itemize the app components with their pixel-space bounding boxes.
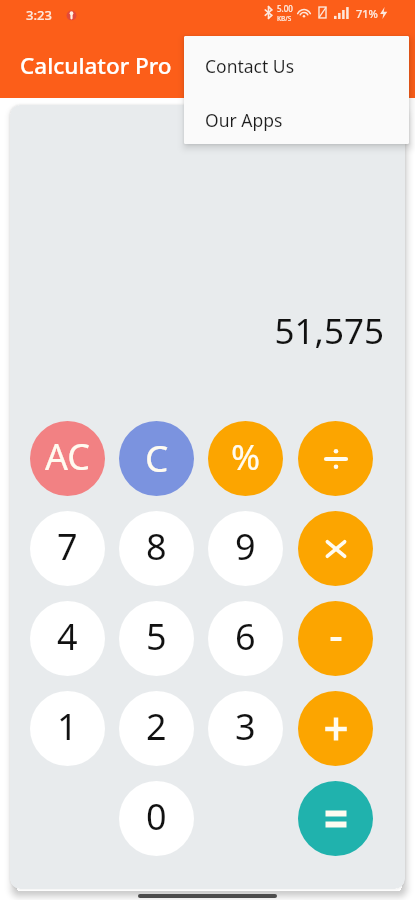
staticText: 0 [146, 792, 167, 841]
staticText: 2 [146, 702, 167, 751]
staticText: 5.00 [277, 3, 293, 14]
button[interactable]: AC [30, 421, 105, 496]
button[interactable]: 0 [119, 781, 194, 856]
staticText: 71% [356, 6, 378, 21]
staticText: 9 [235, 522, 256, 571]
button[interactable]: Multiply [298, 511, 373, 586]
staticText: 7 [57, 522, 78, 571]
button[interactable]: Equals [298, 781, 373, 856]
staticText: Contact Us [205, 54, 295, 78]
button[interactable]: 1 [30, 691, 105, 766]
staticText: 8 [146, 522, 167, 571]
button[interactable]: 7 [30, 511, 105, 586]
button[interactable]: Our Apps [184, 90, 409, 144]
staticText: 4 [57, 612, 78, 661]
button[interactable]: 5 [119, 601, 194, 676]
staticText: C [145, 432, 169, 482]
button[interactable]: 6 [208, 601, 283, 676]
staticText: Our Apps [205, 108, 283, 132]
button[interactable]: C [119, 421, 194, 496]
staticText: 5 [146, 612, 167, 661]
staticText: 3 [235, 702, 256, 751]
staticText: AC [45, 432, 91, 481]
button[interactable]: Contact Us [184, 36, 409, 90]
button[interactable]: % [208, 421, 283, 496]
button[interactable]: 9 [208, 511, 283, 586]
button[interactable]: Divide [298, 421, 373, 496]
staticText: 3:23 [26, 6, 52, 24]
button[interactable]: 8 [119, 511, 194, 586]
staticText: 1 [57, 702, 78, 751]
button[interactable]: Minus [298, 601, 373, 676]
button[interactable]: Plus [298, 691, 373, 766]
staticText: % [231, 433, 261, 481]
button[interactable]: 2 [119, 691, 194, 766]
button[interactable]: 3 [208, 691, 283, 766]
button[interactable]: 4 [30, 601, 105, 676]
staticText: 51,575 [0, 307, 384, 355]
staticText: 6 [235, 612, 256, 661]
staticText: KB/S [277, 14, 292, 23]
staticText: Calculator Pro [20, 50, 172, 81]
